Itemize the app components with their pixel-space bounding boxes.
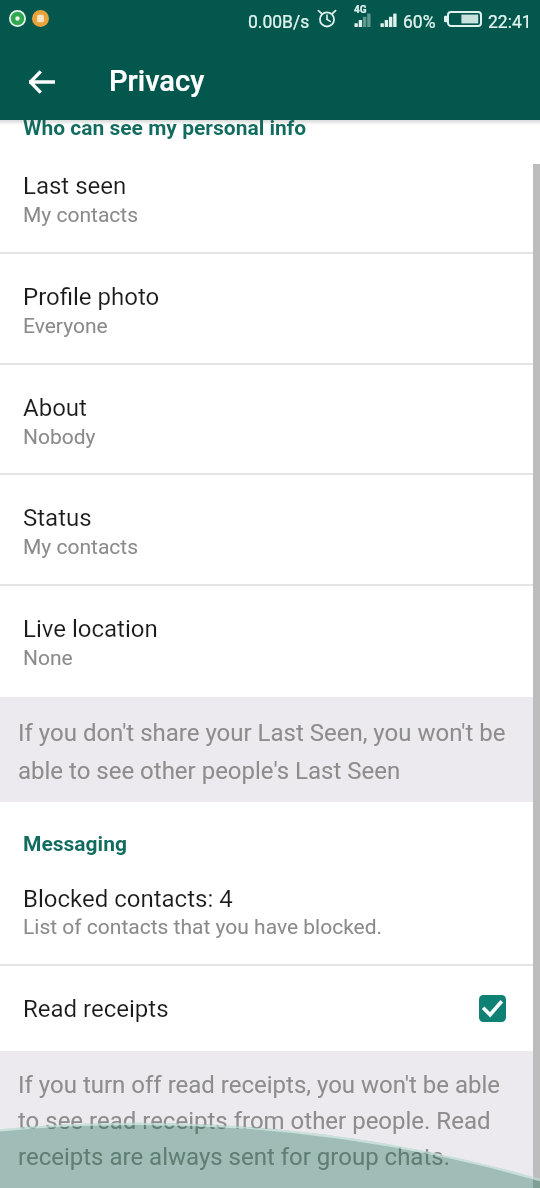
button[interactable]: Back [8,48,76,116]
staticText: Privacy [109,64,205,98]
staticText: If you don't share your Last Seen, you w… [18,711,518,787]
staticText: Read receipts [23,995,169,1023]
staticText: If you turn off read receipts, you won't… [18,1064,518,1172]
staticText: Who can see my personal info [23,116,307,141]
staticText: List of contacts that you have blocked. [23,915,383,940]
button[interactable]: Live location [0,586,540,695]
staticText: Messaging [23,832,127,857]
staticText: Last seen [23,172,127,200]
staticText: Status [23,504,92,532]
staticText: About [23,394,87,422]
button[interactable]: Profile photo [0,254,540,363]
staticText: Blocked contacts: 4 [23,885,233,913]
staticText: Live location [23,615,158,643]
staticText: 4G [354,4,367,16]
staticText: Everyone [23,314,108,339]
button[interactable]: Status [0,475,540,584]
staticText: 0.00B/s [248,12,310,33]
staticText: None [23,646,73,671]
staticText: 22:41 [488,12,532,33]
button[interactable]: Last seen [0,143,540,252]
staticText: Nobody [23,425,96,450]
button[interactable]: Read receipts [0,966,540,1051]
staticText: My contacts [23,535,139,560]
staticText: My contacts [23,203,139,228]
staticText: 60% [403,12,436,33]
staticText: Profile photo [23,283,160,311]
button[interactable]: About [0,365,540,474]
button[interactable]: Blocked contacts: 4 [0,872,540,968]
